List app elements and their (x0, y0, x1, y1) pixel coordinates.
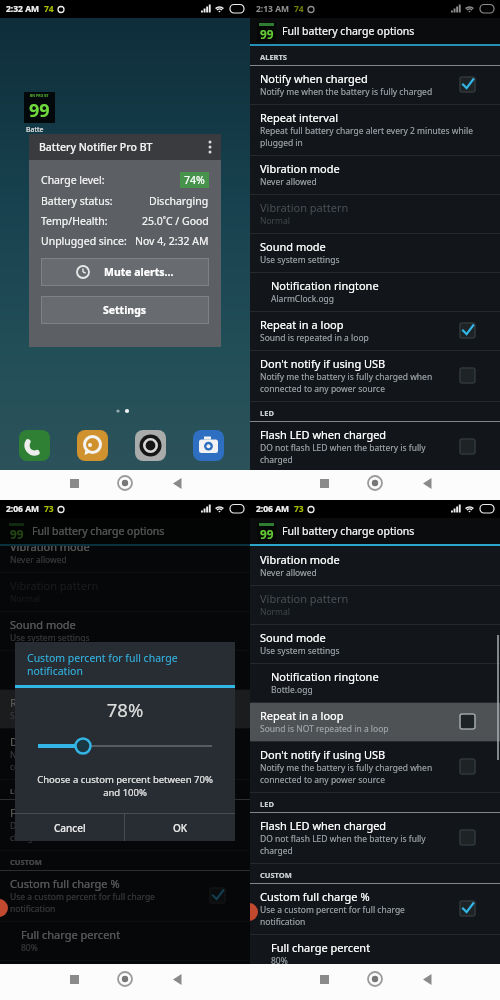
button[interactable]: Sound mode (250, 234, 500, 272)
button[interactable] (135, 430, 166, 461)
staticText: 74 (44, 3, 54, 15)
button[interactable]: Vibration pattern (250, 195, 500, 233)
staticText: Custom full charge % (10, 876, 120, 891)
button[interactable]: Don't notify if using USB (0, 729, 250, 779)
staticText: Normal (260, 215, 291, 227)
button[interactable] (313, 472, 335, 494)
button[interactable]: OK (125, 814, 235, 841)
button[interactable]: Notification ringtone (0, 651, 250, 689)
staticText: Vibration pattern (10, 578, 99, 593)
button[interactable]: Flash LED when charged (250, 422, 500, 472)
button[interactable]: Custom full charge % (250, 884, 500, 934)
staticText: Use a custom percent for full charge (10, 891, 155, 903)
staticText: Don't notify if using USB (260, 747, 386, 762)
staticText: Repeat full battery charge alert every 2… (260, 125, 473, 137)
button[interactable]: Vibration pattern (250, 586, 500, 624)
staticText: DO not flash LED when the battery is ful… (260, 833, 426, 845)
staticText: LED (10, 786, 24, 796)
button[interactable] (416, 968, 438, 990)
staticText: Notification ringtone (271, 278, 379, 293)
staticText: Use system settings (260, 254, 340, 266)
button[interactable] (199, 136, 221, 158)
button[interactable]: Settings (41, 296, 209, 324)
staticText: connected to any power source (260, 774, 385, 786)
button[interactable] (166, 472, 188, 494)
button[interactable]: Notification ringtone (250, 273, 500, 311)
button[interactable]: Full charge percent (250, 935, 500, 973)
button[interactable]: Repeat interval (250, 105, 500, 155)
staticText: 73 (44, 503, 54, 515)
staticText: Battery Notifier Pro BT (39, 140, 153, 154)
staticText: Vibration mode (10, 539, 90, 554)
staticText: Flash LED when charged (260, 818, 387, 833)
button[interactable] (77, 430, 108, 461)
button[interactable] (63, 968, 85, 990)
button[interactable] (313, 968, 335, 990)
staticText: 2:06 AM (6, 503, 40, 515)
staticText: Sound is NOT repeated in a loop (260, 723, 389, 735)
button[interactable]: Don't notify if using USB (250, 742, 500, 792)
button[interactable] (166, 968, 188, 990)
staticText: Notification ringtone (271, 669, 379, 684)
button[interactable] (114, 472, 136, 494)
staticText: Notify me the battery is fully charged w… (260, 371, 433, 383)
staticText: Never allowed (260, 567, 317, 579)
staticText: Vibration mode (260, 161, 340, 176)
staticText: DO not flash LED when the battery is ful… (260, 442, 426, 454)
staticText: charged (260, 845, 293, 857)
button[interactable]: Full charge percent (0, 922, 250, 960)
button[interactable]: Flash LED when charged (250, 813, 500, 863)
button[interactable]: Notification ringtone (250, 664, 500, 702)
button[interactable]: Don't notify if using USB (250, 351, 500, 401)
staticText: DO not flash LED when the battery is ful… (10, 820, 176, 832)
button[interactable]: Vibration mode (250, 547, 500, 585)
button[interactable]: Repeat in a loop (0, 690, 250, 728)
staticText: 25.0˚C / Good (142, 214, 209, 228)
button[interactable] (364, 968, 386, 990)
button[interactable] (19, 430, 50, 461)
button[interactable]: Cancel (15, 814, 124, 841)
staticText: 78% (15, 697, 235, 722)
staticText: LED (260, 408, 274, 418)
staticText: Mute alerts... (104, 265, 174, 279)
staticText: LED (260, 799, 274, 809)
staticText: Vibration pattern (260, 200, 349, 215)
button[interactable] (114, 968, 136, 990)
staticText: AlarmClock.ogg (271, 293, 335, 305)
button[interactable]: Flash LED when charged (0, 800, 250, 850)
button[interactable] (63, 472, 85, 494)
button[interactable]: Mute alerts... (41, 258, 209, 286)
button[interactable]: Custom full charge % (0, 871, 250, 921)
staticText: Sound is repeated in a loop (260, 332, 369, 344)
button[interactable]: Sound mode (250, 625, 500, 663)
staticText: Repeat in a loop (260, 317, 344, 332)
staticText: Full battery charge options (282, 24, 415, 38)
staticText: Normal (10, 593, 41, 605)
button[interactable]: Repeat in a loop (250, 312, 500, 350)
staticText: Repeat in a loop (260, 708, 344, 723)
button[interactable] (193, 430, 224, 461)
staticText: 2:32 AM (6, 3, 40, 15)
button[interactable]: Vibration mode (0, 534, 250, 572)
staticText: Use a custom percent for full charge (260, 904, 405, 916)
staticText: Normal (260, 606, 291, 618)
button[interactable]: BN PRO BT (24, 92, 55, 123)
button[interactable] (416, 472, 438, 494)
button[interactable]: Sound mode (0, 612, 250, 650)
staticText: Notify me the battery is fully charged w… (10, 749, 183, 761)
staticText: connected to any power source (260, 383, 385, 395)
button[interactable]: Notify when charged (250, 66, 500, 104)
staticText: ALERTS (260, 52, 287, 62)
staticText: notification (260, 916, 306, 928)
staticText: Vibration mode (260, 552, 340, 567)
staticText: Notify when charged (260, 71, 368, 86)
button[interactable] (364, 472, 386, 494)
staticText: Vibration pattern (260, 591, 349, 606)
button[interactable]: Repeat in a loop (250, 703, 500, 741)
staticText: Don't notify if using USB (260, 356, 386, 371)
staticText: CUSTOM (260, 870, 292, 880)
staticText: 80% (271, 955, 288, 967)
staticText: Battery status: (41, 194, 113, 208)
button[interactable]: Vibration mode (250, 156, 500, 194)
